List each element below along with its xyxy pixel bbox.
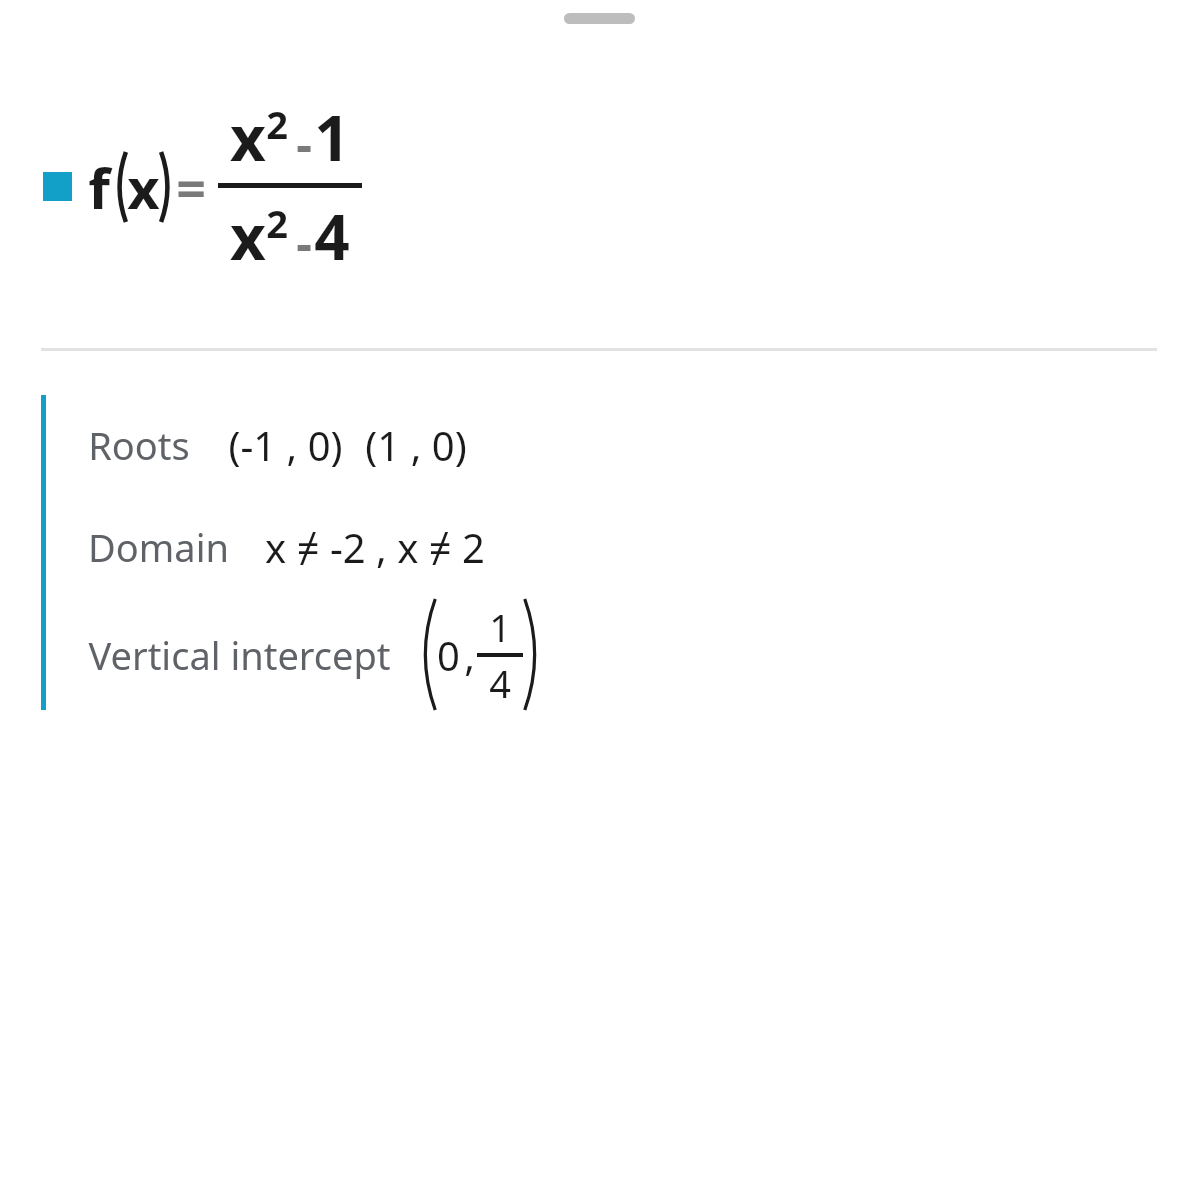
- button[interactable]: Vertical intercept: [88, 599, 1199, 710]
- button[interactable]: Roots: [88, 395, 1199, 495]
- staticText: x: [230, 194, 266, 278]
- staticText: =: [176, 152, 206, 223]
- staticText: (1 , 0): [365, 418, 467, 472]
- staticText: Domain: [88, 521, 229, 573]
- staticText: 2: [266, 197, 288, 249]
- button[interactable]: Drag handle: [564, 13, 635, 24]
- staticText: f: [88, 149, 110, 225]
- staticText: 2: [266, 98, 288, 150]
- staticText: ,: [464, 628, 475, 682]
- staticText: (-1 , 0): [228, 418, 343, 472]
- staticText: 1: [489, 601, 511, 653]
- staticText: 0: [437, 628, 460, 682]
- button[interactable]: f: [0, 24, 1199, 348]
- staticText: x: [127, 149, 160, 225]
- staticText: -: [296, 209, 312, 276]
- staticText: x: [230, 95, 266, 179]
- staticText: 4: [314, 194, 350, 278]
- button[interactable]: Domain: [88, 495, 1199, 599]
- staticText: 1: [314, 95, 350, 179]
- staticText: Vertical intercept: [88, 629, 391, 681]
- staticText: Roots: [88, 419, 190, 471]
- staticText: -: [296, 110, 312, 177]
- staticText: x ≠ -2 , x ≠ 2: [265, 520, 485, 574]
- staticText: 4: [489, 657, 511, 709]
